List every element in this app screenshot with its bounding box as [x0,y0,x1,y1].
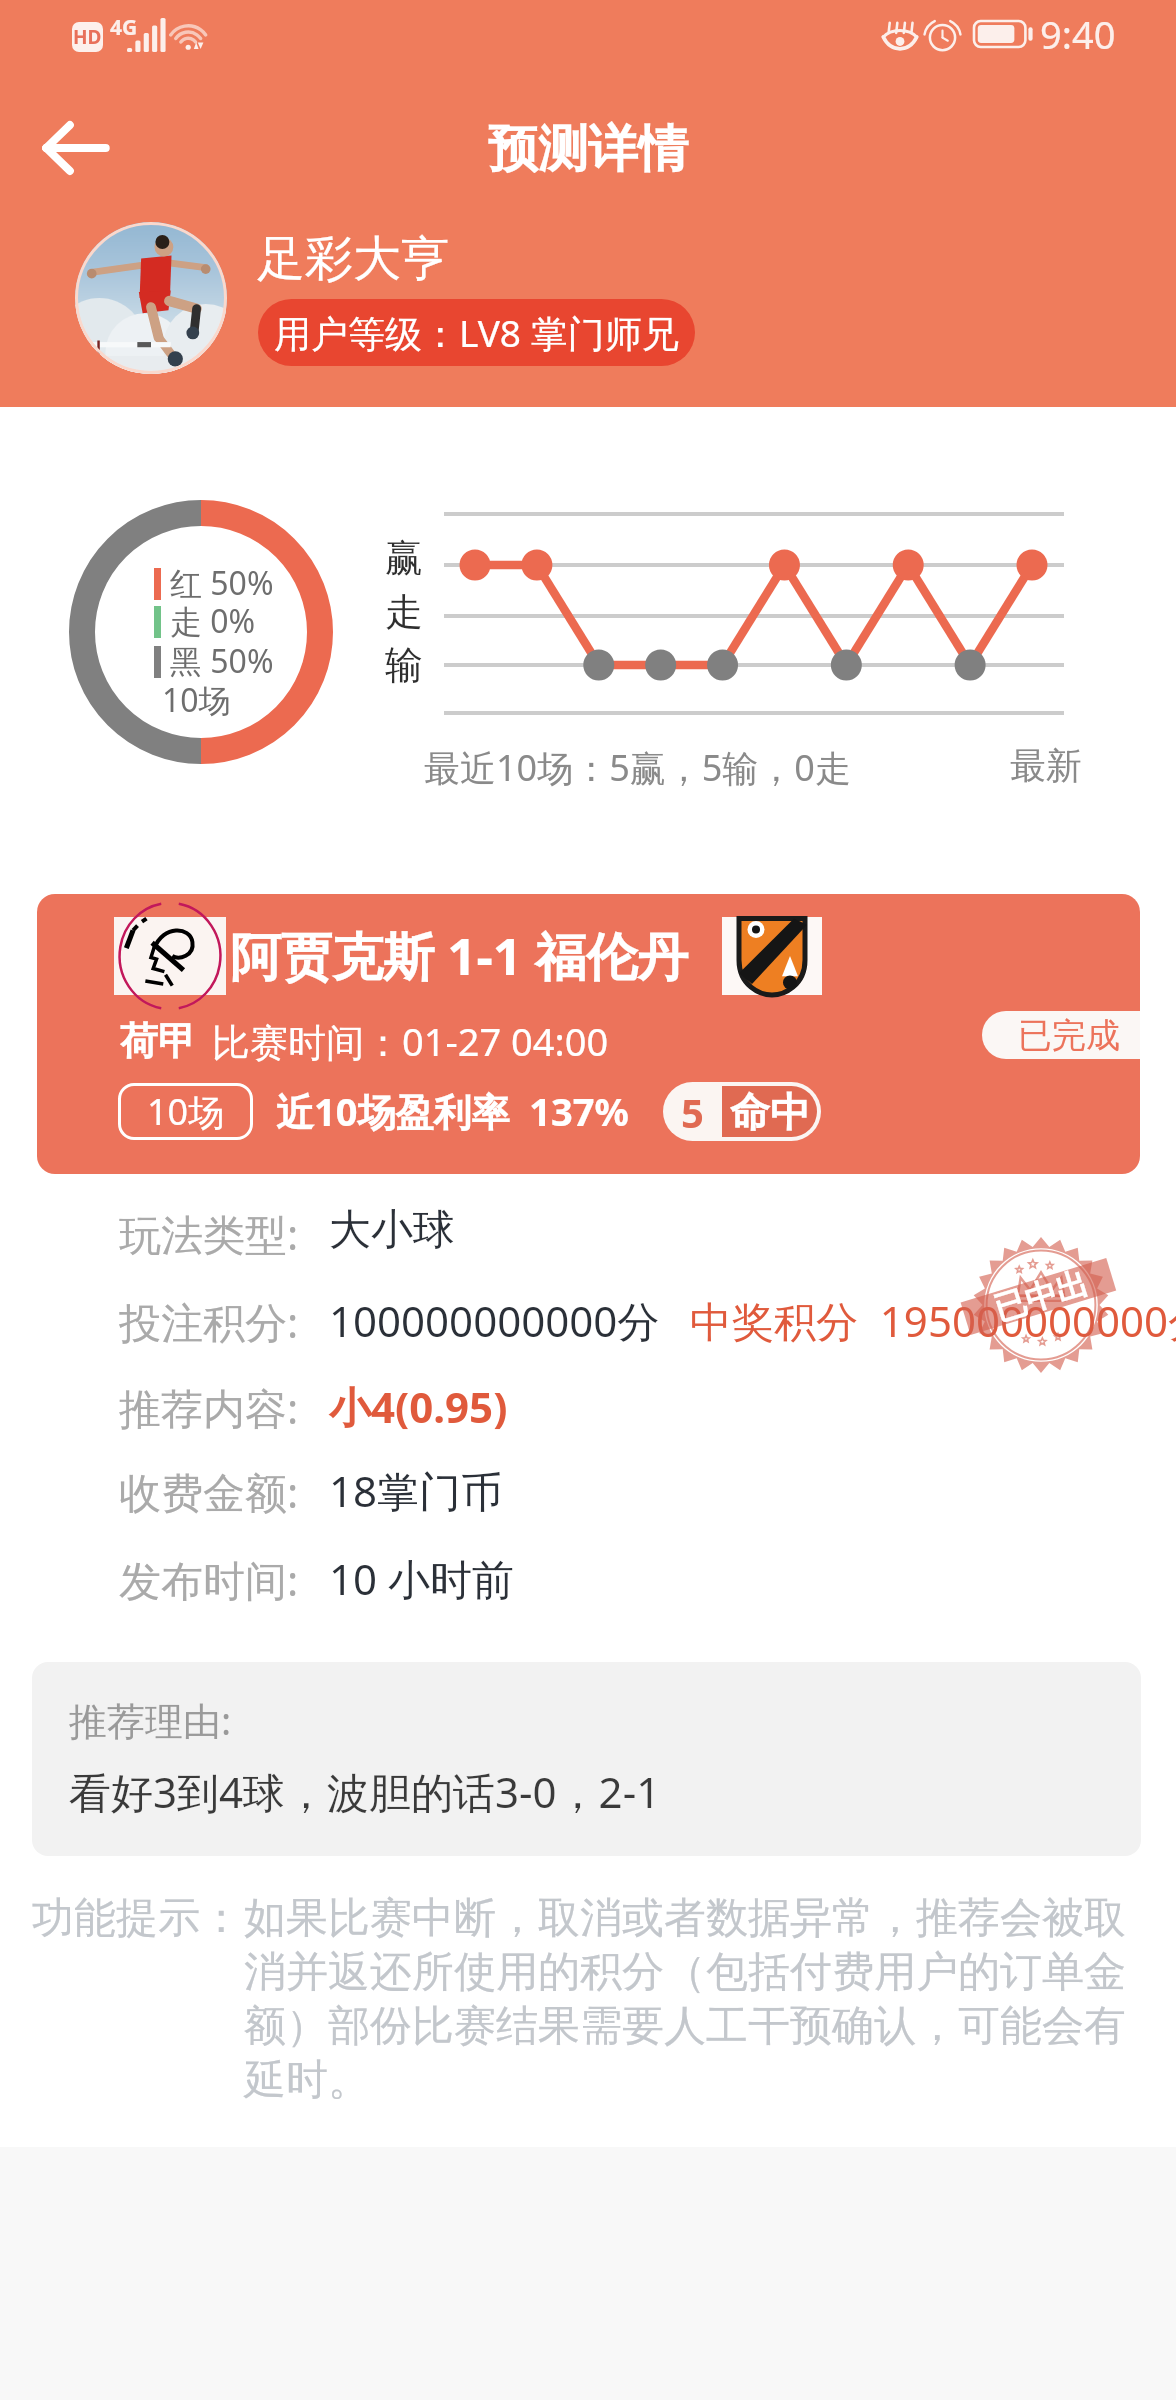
staticText: 中奖积分 195000000000分 [690,1292,1176,1349]
button[interactable]: Back [31,104,119,192]
staticText: 18掌门币 [329,1462,504,1519]
staticText: 收费金额: [119,1463,299,1520]
staticText: 输 [385,641,423,689]
staticText: 命中 [730,1087,810,1137]
staticText: 大小球 [329,1204,455,1257]
staticText: 黑 50% [170,639,274,683]
staticText: 10场 [147,1087,225,1136]
staticText: 足彩大亨 [257,229,449,289]
staticText: 赢 [385,534,423,582]
staticText: 100000000000分 [329,1292,660,1349]
staticText: 最近10场：5赢，5输，0走 [424,743,851,792]
staticText: 阿贾克斯 1-1 福伦丹 [230,920,689,990]
staticText: 红 50% [170,561,274,605]
staticText: 已中出 [989,1263,1093,1329]
staticText: 5 [681,1085,704,1139]
staticText: 9:40 [1040,8,1116,60]
staticText: 已完成 [1018,1014,1120,1057]
staticText: 推荐理由: [69,1694,232,1746]
staticText: HD [73,24,102,50]
staticText: 走 0% [170,599,256,643]
staticText: 比赛时间：01-27 04:00 [212,1015,609,1067]
button[interactable]: 用户等级：LV8 掌门师兄 [258,299,695,366]
staticText: 小4(0.95) [329,1378,508,1435]
staticText: 近10场盈利率 137% [276,1085,629,1137]
staticText: 10场 [162,678,231,722]
staticText: 用户等级：LV8 掌门师兄 [274,307,679,358]
staticText: 玩法类型: [119,1205,299,1262]
staticText: 最新 [1010,743,1082,788]
staticText: 10 小时前 [329,1550,514,1607]
staticText: 投注积分: [119,1293,299,1350]
staticText: 功能提示： [32,1892,242,1945]
button[interactable]: 阿贾克斯 1-1 福伦丹 [37,894,1140,1174]
button[interactable]: 已完成 [982,1011,1140,1059]
staticText: 走 [385,588,423,636]
staticText: 预测详情 [488,118,688,181]
staticText: 看好3到4球，波胆的话3-0，2-1 [69,1763,661,1820]
staticText: 4G [110,13,138,42]
staticText: 如果比赛中断，取消或者数据异常，推荐会被取消并返还所使用的积分（包括付费用户的订… [244,1892,1140,2107]
staticText: 发布时间: [119,1551,299,1608]
staticText: 推荐内容: [119,1379,299,1436]
staticText: 荷甲 [120,1017,196,1065]
